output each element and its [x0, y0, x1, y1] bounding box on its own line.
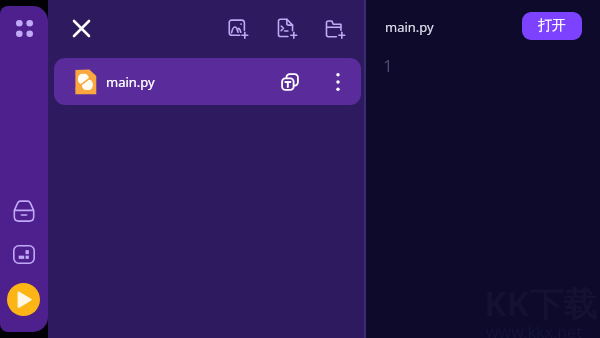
button[interactable]: New folder	[320, 13, 350, 43]
staticText: 打开	[538, 17, 566, 35]
button[interactable]: Archive	[6, 193, 42, 229]
staticText: main.py	[106, 73, 155, 91]
staticText: main.py	[385, 18, 434, 36]
button[interactable]: Layout	[6, 236, 42, 272]
staticText: 1	[383, 54, 393, 77]
button[interactable]: Apps	[8, 12, 40, 44]
button[interactable]: 打开	[522, 12, 582, 40]
button[interactable]: Duplicate	[274, 66, 306, 98]
button[interactable]: Run	[7, 283, 40, 316]
staticText: www.kkx.net	[486, 321, 582, 338]
button[interactable]: New file	[272, 13, 302, 43]
button[interactable]: main.py	[54, 58, 361, 105]
button[interactable]: More options	[324, 68, 352, 96]
button[interactable]: Close	[66, 13, 96, 43]
button[interactable]: Add image	[223, 13, 253, 43]
